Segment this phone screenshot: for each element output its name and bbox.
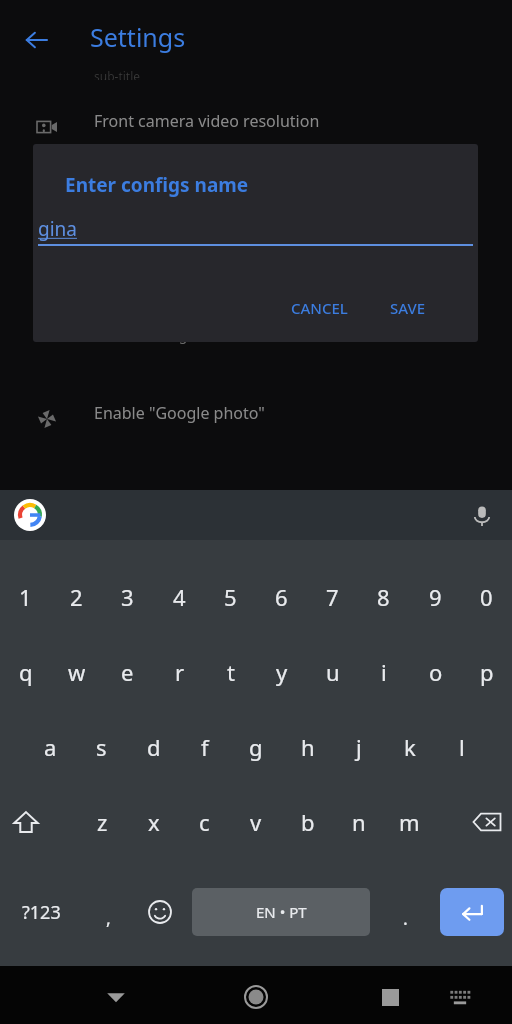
button[interactable]: CANCEL: [281, 290, 358, 326]
staticText: Front camera video resolution: [94, 110, 320, 132]
button[interactable]: Shift: [0, 787, 51, 857]
button[interactable]: 5: [205, 562, 256, 632]
button[interactable]: 3: [102, 562, 153, 632]
button[interactable]: 4: [154, 562, 205, 632]
button[interactable]: n: [333, 787, 384, 857]
button[interactable]: Home: [234, 975, 278, 1019]
button[interactable]: Switch keyboard: [438, 975, 482, 1019]
staticText: 6: [275, 582, 288, 612]
staticText: i: [381, 657, 387, 687]
staticText: k: [404, 732, 416, 762]
staticText: ?123: [22, 900, 61, 925]
button[interactable]: SAVE: [380, 290, 436, 326]
button[interactable]: Front camera video resolution: [0, 110, 512, 150]
button[interactable]: Back: [94, 975, 138, 1019]
button[interactable]: i: [358, 637, 409, 707]
button[interactable]: w: [51, 637, 102, 707]
staticText: s: [96, 732, 107, 762]
button[interactable]: 6: [256, 562, 307, 632]
button[interactable]: f: [179, 712, 230, 782]
button[interactable]: z: [77, 787, 128, 857]
staticText: v: [250, 807, 262, 837]
button[interactable]: m: [384, 787, 435, 857]
staticText: gina: [38, 216, 77, 242]
staticText: 7: [326, 582, 339, 612]
button[interactable]: 9: [410, 562, 461, 632]
button[interactable]: ?123: [0, 879, 82, 945]
button[interactable]: Voice input: [466, 500, 498, 532]
staticText: e: [121, 657, 134, 687]
staticText: CANCEL: [291, 298, 348, 318]
staticText: a: [44, 732, 57, 762]
staticText: g: [249, 732, 263, 762]
button[interactable]: .: [378, 879, 432, 945]
button[interactable]: y: [256, 637, 307, 707]
staticText: ,: [106, 906, 111, 931]
staticText: n: [352, 807, 366, 837]
staticText: 5: [224, 582, 237, 612]
button[interactable]: 2: [51, 562, 102, 632]
staticText: j: [356, 732, 362, 762]
staticText: b: [301, 807, 315, 837]
button[interactable]: Enable "Google photo": [0, 402, 512, 442]
button[interactable]: gina: [38, 216, 473, 252]
button[interactable]: c: [179, 787, 230, 857]
staticText: f: [201, 732, 209, 762]
button[interactable]: s: [76, 712, 127, 782]
staticText: q: [19, 657, 33, 687]
staticText: sub-title: [94, 68, 141, 80]
button[interactable]: o: [410, 637, 461, 707]
staticText: l: [459, 732, 465, 762]
staticText: Settings: [90, 20, 186, 54]
button[interactable]: Recents: [368, 975, 412, 1019]
staticText: Enter configs name: [65, 172, 249, 198]
staticText: w: [68, 657, 86, 687]
button[interactable]: Google Assistant: [13, 498, 47, 532]
button[interactable]: e: [102, 637, 153, 707]
button[interactable]: 7: [307, 562, 358, 632]
button[interactable]: g: [230, 712, 281, 782]
button[interactable]: ,: [82, 879, 134, 945]
staticText: t: [227, 657, 235, 687]
staticText: o: [429, 657, 443, 687]
button[interactable]: l: [436, 712, 487, 782]
staticText: Enable "Google photo": [94, 402, 265, 424]
staticText: y: [276, 657, 288, 687]
button[interactable]: 0: [461, 562, 512, 632]
button[interactable]: x: [128, 787, 179, 857]
staticText: x: [148, 807, 160, 837]
staticText: 2: [70, 582, 83, 612]
button[interactable]: p: [461, 637, 512, 707]
button[interactable]: b: [282, 787, 333, 857]
staticText: 0: [480, 582, 493, 612]
button[interactable]: r: [154, 637, 205, 707]
staticText: /GCam/Configs/: [94, 325, 200, 344]
staticText: d: [147, 732, 161, 762]
button[interactable]: d: [128, 712, 179, 782]
staticText: p: [480, 657, 494, 687]
button[interactable]: Save settings: [0, 300, 512, 358]
staticText: 8: [377, 582, 390, 612]
button[interactable]: Emoji: [134, 879, 186, 945]
staticText: c: [199, 807, 210, 837]
staticText: .: [403, 906, 408, 931]
button[interactable]: 1: [0, 562, 51, 632]
button[interactable]: a: [25, 712, 76, 782]
button[interactable]: t: [205, 637, 256, 707]
button[interactable]: q: [0, 637, 51, 707]
button[interactable]: k: [384, 712, 435, 782]
button[interactable]: EN • PT: [192, 888, 370, 936]
button[interactable]: Enter: [440, 888, 504, 936]
button[interactable]: u: [307, 637, 358, 707]
button[interactable]: j: [333, 712, 384, 782]
button[interactable]: h: [282, 712, 333, 782]
button[interactable]: Backspace: [461, 787, 512, 857]
button[interactable]: 8: [358, 562, 409, 632]
staticText: m: [399, 807, 420, 837]
button[interactable]: v: [230, 787, 281, 857]
staticText: z: [97, 807, 108, 837]
button[interactable]: Back: [14, 18, 58, 62]
staticText: 4: [173, 582, 186, 612]
staticText: r: [175, 657, 185, 687]
